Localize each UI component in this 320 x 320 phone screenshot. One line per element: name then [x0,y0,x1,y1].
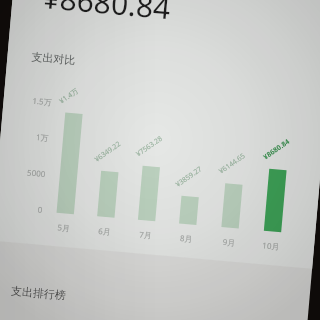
staticText: 7月 [125,227,166,242]
staticText: 0 [0,199,43,215]
button[interactable]: 支出对比 [31,49,76,67]
staticText: 5月 [43,220,84,234]
button[interactable]: 支出排行榜 [10,283,66,302]
staticText: ¥3859.27 [173,162,205,192]
staticText: ¥7563.28 [134,132,165,161]
staticText: ¥1.4万 [57,85,81,108]
button[interactable]: ¥8680.84 [41,0,173,28]
staticText: 10月 [251,238,291,253]
staticText: ¥6144.65 [216,149,248,178]
staticText: 1.5万 [0,91,52,107]
staticText: 9月 [209,235,249,249]
staticText: ¥8680.84 [41,0,173,28]
staticText: ¥8680.84 [261,135,292,164]
staticText: 8月 [166,231,207,245]
staticText: ¥6349.22 [92,137,124,167]
staticText: 1万 [0,127,49,143]
staticText: 5000 [0,163,46,179]
staticText: 6月 [84,224,125,238]
